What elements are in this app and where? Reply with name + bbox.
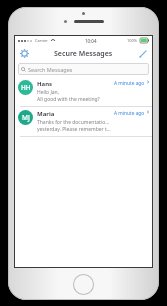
staticText: A minute ago [114, 110, 145, 117]
button[interactable]: Search Messages [18, 63, 149, 75]
staticText: 10:04 [85, 38, 97, 44]
staticText: 100% [127, 38, 138, 43]
button[interactable]: Settings [18, 47, 31, 60]
staticText: yesterday. Please remember to bring your… [37, 126, 112, 133]
staticText: HH [21, 83, 31, 92]
staticText: MJ [22, 113, 30, 122]
staticText: All good with the meeting? [37, 96, 100, 103]
staticText: Hello Jan, [37, 89, 60, 96]
staticText: Maria [37, 110, 55, 118]
staticText: Secure Messages [54, 49, 113, 59]
button[interactable]: MJ [14, 107, 153, 136]
staticText: Hans [37, 80, 53, 88]
staticText: Search Messages [28, 66, 73, 73]
button[interactable]: Compose [136, 47, 149, 60]
button[interactable]: HH [14, 77, 153, 106]
staticText: A minute ago [114, 80, 145, 87]
staticText: Thanks for the documentation for the mee… [37, 119, 112, 126]
staticText: Carrier [35, 38, 49, 43]
